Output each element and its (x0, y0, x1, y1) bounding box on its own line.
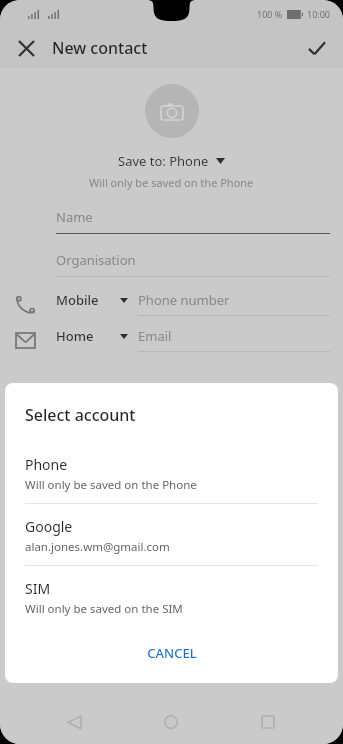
staticText: Will only be saved on the Phone (25, 477, 197, 493)
button[interactable]: Organisation (56, 251, 330, 277)
button[interactable]: Home (149, 700, 193, 744)
staticText: 100 % (257, 8, 283, 20)
button[interactable]: Name (56, 208, 330, 234)
staticText: Phone (25, 455, 68, 474)
staticText: New contact (52, 37, 148, 59)
button[interactable]: Recents (246, 700, 290, 744)
button[interactable]: Add photo (145, 84, 199, 138)
staticText: 10:00 (307, 8, 331, 20)
button[interactable]: Back (52, 700, 96, 744)
staticText: Save to: Phone (118, 152, 209, 170)
button[interactable]: Google (5, 515, 338, 565)
staticText: CANCEL (147, 644, 197, 662)
staticText: Email (138, 327, 172, 345)
staticText: Name (56, 208, 93, 226)
staticText: alan.jones.wm@gmail.com (25, 539, 170, 555)
button[interactable]: Save (299, 30, 335, 66)
staticText: Phone number (138, 291, 230, 309)
staticText: Organisation (56, 251, 136, 269)
staticText: Select account (25, 404, 136, 426)
button[interactable]: CANCEL (131, 636, 213, 670)
staticText: Will only be saved on the SIM (25, 601, 183, 617)
staticText: Google (25, 517, 73, 536)
button[interactable]: SIM (5, 577, 338, 627)
button[interactable]: Mobile (16, 291, 330, 317)
staticText: Mobile (56, 291, 99, 309)
staticText: SIM (25, 579, 51, 598)
button[interactable]: Phone (5, 453, 338, 503)
button[interactable]: Home (16, 327, 330, 353)
button[interactable]: Save to: Phone (110, 150, 233, 172)
staticText: Will only be saved on the Phone (89, 175, 254, 190)
button[interactable]: Close (8, 30, 44, 66)
staticText: Home (56, 327, 94, 345)
